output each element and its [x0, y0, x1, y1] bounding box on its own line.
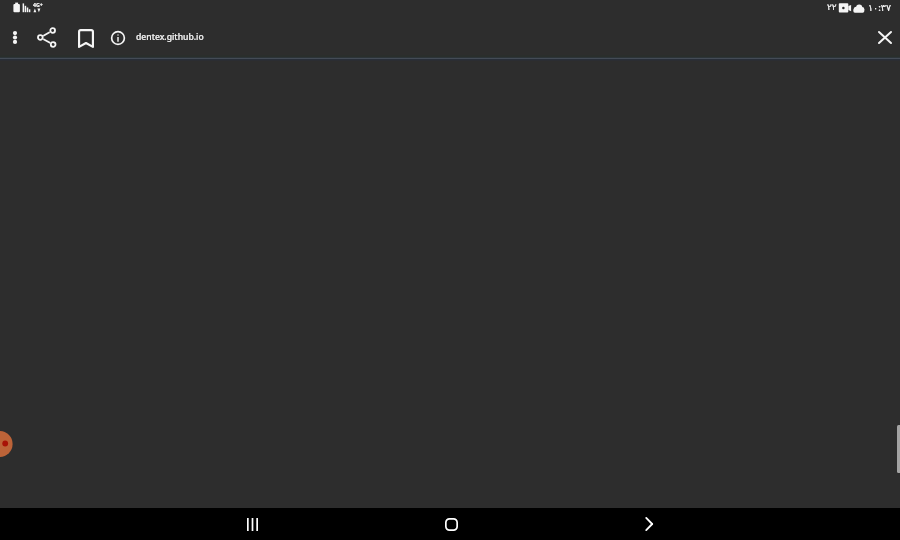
staticText: 4G+ [33, 1, 43, 8]
button[interactable]: Share [29, 20, 63, 54]
button[interactable]: Back [625, 511, 673, 537]
button[interactable]: Close [868, 20, 900, 54]
button[interactable]: Recent apps [228, 511, 276, 537]
staticText: ١٠:٣٧ [868, 1, 891, 14]
button[interactable]: More options [0, 20, 30, 54]
button[interactable]: Bookmark [69, 21, 103, 55]
staticText: dentex.github.io [136, 31, 204, 43]
button[interactable]: Home [427, 511, 475, 537]
staticText: ٢٢ [827, 2, 837, 12]
button[interactable]: Page information [101, 21, 135, 55]
button[interactable]: dentex.github.io [132, 20, 212, 54]
